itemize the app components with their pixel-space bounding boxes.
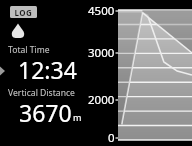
button[interactable]: Dive log summary — [0, 0, 192, 146]
